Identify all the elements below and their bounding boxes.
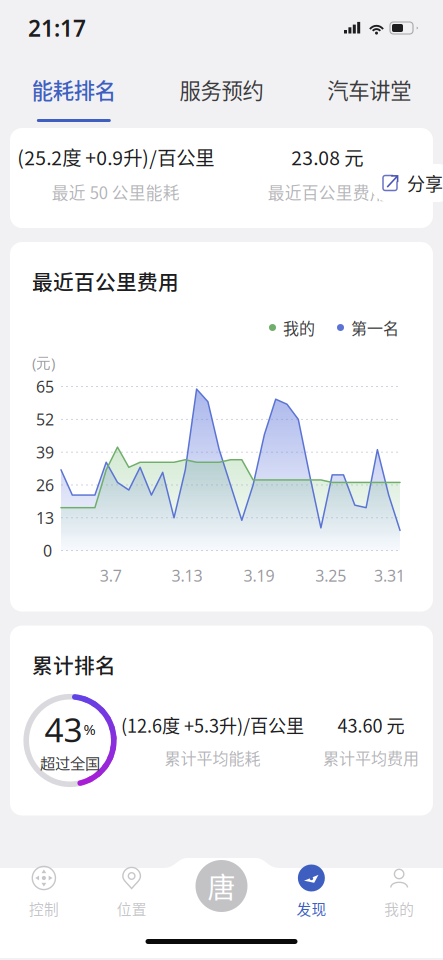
staticText: 3.31: [374, 565, 405, 586]
staticText: 累计平均费用: [323, 746, 419, 769]
staticText: 累计排名: [32, 650, 116, 679]
staticText: 43: [44, 707, 82, 752]
staticText: 43.60 元: [337, 712, 404, 738]
staticText: 汽车讲堂: [327, 74, 411, 105]
button[interactable]: 唐 车型主页: [195, 860, 247, 912]
staticText: 最近百公里费用: [32, 266, 179, 296]
button[interactable]: 能耗排名: [0, 56, 148, 128]
staticText: 我的: [384, 898, 414, 919]
staticText: (25.2度 +0.9升)/百公里: [17, 143, 214, 171]
staticText: 能耗排名: [32, 74, 116, 105]
staticText: 控制: [29, 898, 59, 919]
staticText: 13: [36, 507, 54, 528]
staticText: 3.19: [243, 565, 274, 586]
staticText: 52: [36, 409, 54, 430]
staticText: 唐: [207, 866, 235, 906]
staticText: 服务预约: [179, 74, 263, 105]
staticText: 3.13: [172, 565, 203, 586]
staticText: 23.08 元: [291, 143, 363, 171]
button[interactable]: 位置: [88, 860, 176, 960]
staticText: 我的: [283, 316, 315, 339]
staticText: 位置: [117, 898, 147, 919]
staticText: 累计平均能耗: [164, 746, 260, 769]
staticText: %: [83, 720, 95, 739]
staticText: 0: [43, 540, 52, 561]
staticText: 超过全国: [40, 751, 100, 774]
staticText: 21:17: [28, 13, 86, 43]
staticText: (12.6度 +5.3升)/百公里: [121, 712, 304, 738]
button[interactable]: 服务预约: [148, 56, 295, 128]
staticText: 3.25: [315, 565, 346, 586]
staticText: 最近百公里费用: [268, 180, 387, 204]
staticText: 发现: [296, 898, 326, 919]
staticText: 最近 50 公里能耗: [52, 180, 180, 204]
staticText: 65: [36, 376, 54, 397]
button[interactable]: 汽车讲堂: [295, 56, 443, 128]
staticText: 第一名: [351, 316, 399, 339]
button[interactable]: 发现: [267, 860, 355, 960]
staticText: 26: [36, 474, 54, 495]
button[interactable]: 我的: [355, 860, 443, 960]
staticText: 3.7: [100, 565, 122, 586]
button[interactable]: 分享: [370, 164, 443, 202]
staticText: (元): [32, 353, 55, 373]
staticText: 分享: [407, 170, 443, 196]
staticText: 39: [36, 441, 54, 463]
button[interactable]: 控制: [0, 860, 88, 960]
